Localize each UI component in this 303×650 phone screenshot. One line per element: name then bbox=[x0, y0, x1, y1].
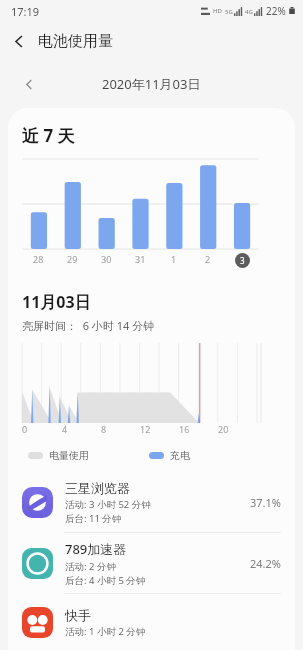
staticText: 活动: 2 分钟 bbox=[65, 560, 116, 573]
staticText: 2 bbox=[205, 253, 211, 265]
staticText: 快手 bbox=[65, 607, 91, 623]
staticText: 8 bbox=[101, 423, 107, 435]
staticText: 活动: 1 小时 2 分钟 bbox=[65, 625, 146, 638]
staticText: 20 bbox=[218, 423, 229, 435]
staticText: 1 bbox=[171, 253, 177, 265]
staticText: 5G bbox=[225, 8, 233, 16]
staticText: 亮屏时间： 6 小时 14 分钟 bbox=[22, 318, 155, 333]
staticText: 24.2% bbox=[250, 556, 281, 571]
staticText: 3 bbox=[240, 255, 245, 266]
button[interactable]: 三星浏览器 bbox=[8, 472, 295, 532]
staticText: 近 7 天 bbox=[22, 124, 75, 147]
staticText: 后台: 11 分钟 bbox=[65, 512, 122, 525]
staticText: 30 bbox=[101, 253, 112, 265]
staticText: HD bbox=[213, 7, 222, 15]
staticText: 0 bbox=[22, 423, 28, 435]
staticText: 充电 bbox=[170, 449, 190, 462]
staticText: 电池使用量 bbox=[38, 32, 113, 51]
staticText: 活动: 3 小时 52 分钟 bbox=[65, 498, 151, 511]
staticText: 17:19 bbox=[11, 4, 40, 19]
button[interactable]: 快手 bbox=[8, 594, 295, 650]
staticText: 22% bbox=[266, 4, 286, 18]
staticText: 4G bbox=[245, 8, 253, 16]
staticText: 16 bbox=[179, 423, 190, 435]
button[interactable]: Back bbox=[0, 22, 38, 60]
staticText: 后台: 4 小时 5 分钟 bbox=[65, 574, 146, 587]
staticText: 三星浏览器 bbox=[65, 480, 130, 496]
staticText: 电量使用 bbox=[49, 449, 89, 462]
staticText: 11月03日 bbox=[22, 291, 91, 313]
button[interactable]: 789加速器 bbox=[8, 533, 295, 593]
staticText: 12 bbox=[140, 423, 151, 435]
staticText: 28 bbox=[33, 253, 44, 265]
staticText: 37.1% bbox=[250, 495, 281, 510]
staticText: 4 bbox=[62, 423, 68, 435]
staticText: 2020年11月03日 bbox=[102, 75, 201, 93]
staticText: 31 bbox=[135, 253, 146, 265]
staticText: 789加速器 bbox=[65, 540, 127, 558]
button[interactable]: Previous day bbox=[16, 71, 42, 97]
staticText: 29 bbox=[67, 253, 78, 265]
